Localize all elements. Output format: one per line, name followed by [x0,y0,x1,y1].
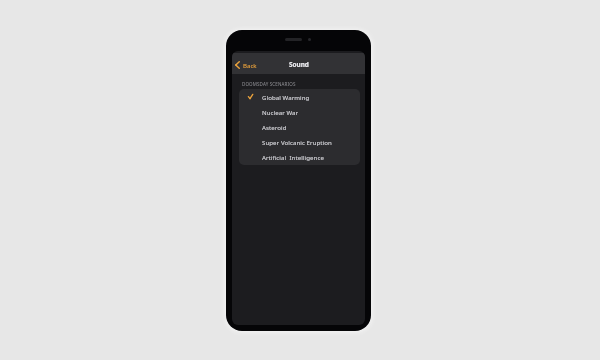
button[interactable]: Nuclear War [239,104,360,119]
staticText: Back [243,61,257,69]
button[interactable]: Super Volcanic Eruption [239,134,360,149]
button[interactable]: Asteroid [239,119,360,134]
staticText: DOOMSDAY SCENARIOS [242,81,296,87]
button[interactable]: Back [232,53,262,74]
button[interactable]: Artificial Intelligence [239,149,360,164]
staticText: Global Warming [262,93,310,101]
staticText: Nuclear War [262,108,299,116]
staticText: Sound [289,60,309,69]
staticText: Artificial Intelligence [262,153,324,161]
button[interactable]: Global Warming [239,89,360,104]
staticText: Super Volcanic Eruption [262,138,332,146]
staticText: Asteroid [262,123,287,131]
